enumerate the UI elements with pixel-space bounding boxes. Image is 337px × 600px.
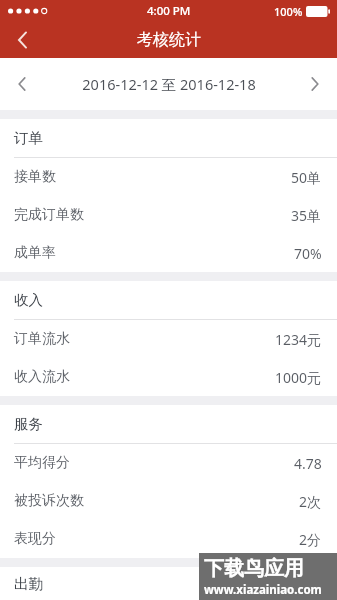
staticText: 订单 [14,129,43,147]
staticText: 4:00 PM [147,3,191,19]
staticText: 下载鸟应用 [204,556,304,581]
staticText: 表现分 [14,530,56,548]
button[interactable]: 被投诉次数 [0,482,337,520]
button[interactable]: 表现分 [0,520,337,558]
button[interactable]: 成单率 [0,234,337,272]
staticText: 70% [294,244,322,263]
button[interactable]: 订单流水 [0,320,337,358]
button[interactable]: Back [0,22,44,58]
staticText: 服务 [14,415,43,433]
staticText: 2016-12-12 至 2016-12-18 [82,74,256,94]
staticText: 订单流水 [14,330,70,348]
staticText: 考核统计 [137,30,201,50]
button[interactable]: 完成订单数 [0,196,337,234]
button[interactable]: 平均得分 [0,444,337,482]
staticText: 1000元 [275,368,322,387]
button[interactable]: 接单数 [0,158,337,196]
staticText: 100% [274,4,303,19]
staticText: 被投诉次数 [14,492,84,510]
button[interactable]: 收入流水 [0,358,337,396]
staticText: 收入 [14,291,43,309]
staticText: 出勤 [14,575,43,593]
staticText: 35单 [291,206,322,225]
staticText: 4.78 [294,454,322,473]
staticText: www.xiazainiao.com [204,582,322,598]
staticText: 平均得分 [14,454,70,472]
button[interactable]: Previous week [0,58,44,110]
staticText: 50单 [291,168,322,187]
staticText: 1234元 [275,330,322,349]
staticText: 收入流水 [14,368,70,386]
staticText: 成单率 [14,244,56,262]
staticText: 2分 [299,530,322,549]
button[interactable]: Next week [293,58,337,110]
staticText: 接单数 [14,168,56,186]
staticText: 2次 [299,492,322,511]
staticText: 完成订单数 [14,206,84,224]
